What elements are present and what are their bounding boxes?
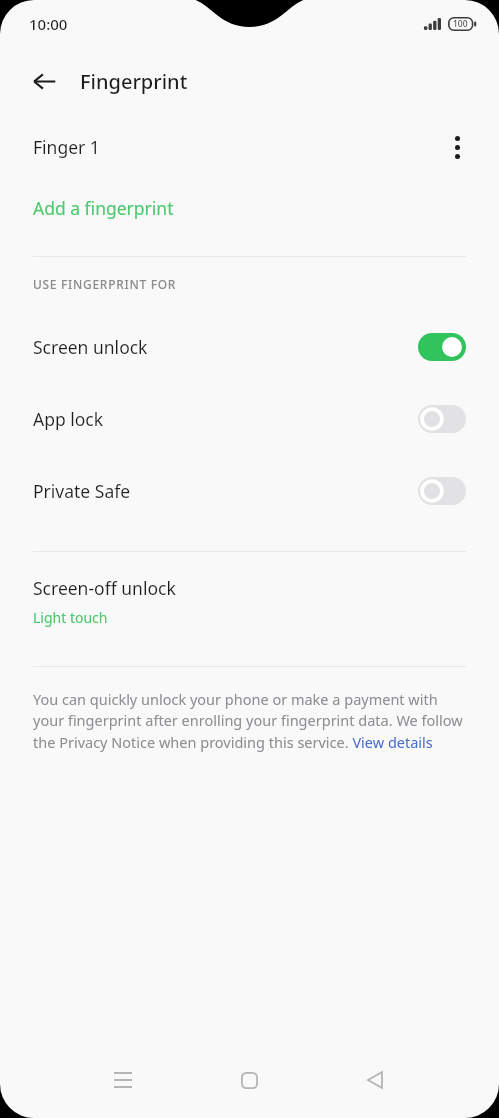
staticText: 100	[453, 18, 468, 30]
staticText: You can quickly unlock your phone or mak…	[33, 689, 471, 753]
button[interactable]: Back	[348, 1053, 402, 1107]
button[interactable]: Private Safe	[0, 455, 499, 527]
staticText: Add a fingerprint	[33, 196, 174, 220]
staticText: Private Safe	[33, 479, 131, 503]
staticText: Screen unlock	[33, 335, 148, 359]
staticText: Screen-off unlock	[33, 576, 176, 600]
button[interactable]: Home	[222, 1053, 276, 1107]
button[interactable]: Add a fingerprint	[0, 180, 499, 236]
button[interactable]: Screen unlock	[0, 311, 499, 383]
staticText: Finger 1	[33, 135, 100, 159]
staticText: 10:00	[29, 14, 68, 34]
staticText: App lock	[33, 407, 104, 431]
button[interactable]: More options	[440, 130, 474, 164]
button[interactable]: Back	[21, 58, 67, 104]
button[interactable]: Finger 1	[0, 114, 499, 180]
staticText: Fingerprint	[80, 68, 188, 95]
button[interactable]: Screen-off unlock	[0, 552, 499, 650]
staticText: USE FINGERPRINT FOR	[33, 276, 177, 292]
button[interactable]: App lock	[0, 383, 499, 455]
staticText: Light touch	[33, 608, 108, 627]
button[interactable]: Recents	[96, 1053, 150, 1107]
